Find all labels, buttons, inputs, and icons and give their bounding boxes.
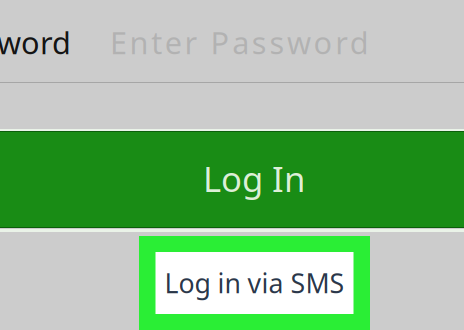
staticText: Enter Password xyxy=(110,22,369,63)
button[interactable]: Log In xyxy=(0,131,464,228)
staticText: Log In xyxy=(203,155,305,201)
button[interactable]: Log in via SMS xyxy=(139,236,370,330)
staticText: word xyxy=(0,22,71,63)
staticText: Log in via SMS xyxy=(164,265,344,301)
